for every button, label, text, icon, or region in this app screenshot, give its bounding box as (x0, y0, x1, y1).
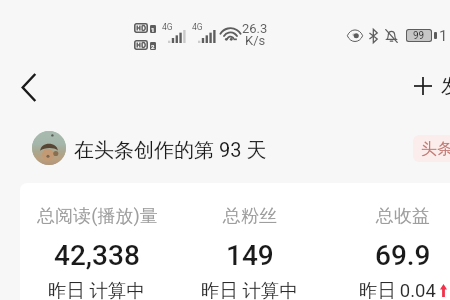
staticText: 昨日 计算中 (48, 279, 146, 300)
staticText: 昨日 0.04 (359, 279, 436, 300)
staticText: 149 (226, 239, 274, 272)
staticText: 69.9 (375, 239, 431, 272)
staticText: K/s (245, 33, 266, 48)
staticText: 2 (151, 43, 155, 50)
other: Eye protection (347, 30, 363, 41)
staticText: 在头条创作的第 93 天 (74, 138, 267, 163)
staticText: 4G (162, 22, 173, 32)
staticText: 99 (413, 30, 425, 41)
staticText: 42,338 (54, 239, 140, 272)
button[interactable]: 发布 (414, 66, 450, 106)
button[interactable]: 总粉丝 (170, 201, 330, 300)
button[interactable]: 总收益 (323, 201, 450, 300)
staticText: 4G (192, 22, 203, 32)
staticText: 昨日 计算中 (201, 279, 299, 300)
staticText: 1 (439, 27, 448, 45)
staticText: 头条号 (421, 139, 450, 159)
staticText: 1 (151, 26, 155, 33)
button[interactable]: 总阅读(播放)量 (20, 201, 177, 300)
other: Bluetooth (369, 29, 378, 43)
button[interactable]: Avatar (32, 131, 66, 165)
staticText: 26.3 (242, 21, 268, 36)
button[interactable]: 头条号 (413, 135, 450, 162)
staticText: 总收益 (376, 205, 430, 228)
other: Silent (385, 29, 398, 43)
staticText: 总粉丝 (223, 205, 277, 228)
staticText: 总阅读(播放)量 (37, 205, 158, 228)
staticText: 发布 (441, 74, 450, 99)
button[interactable]: Back (7, 65, 51, 109)
